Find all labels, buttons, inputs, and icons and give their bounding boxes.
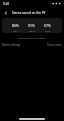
staticText: 9:41	[3, 2, 10, 6]
staticText: Connected to this device	[18, 36, 46, 39]
button[interactable]: 85%	[2, 18, 62, 33]
staticText: Left	[13, 29, 18, 32]
button[interactable]: Connected to this device	[0, 33, 64, 41]
staticText: Disconnect	[47, 43, 62, 47]
staticText: 85%	[12, 23, 19, 28]
staticText: Right	[29, 29, 35, 32]
staticText: 91%	[28, 23, 35, 28]
staticText: Case	[45, 29, 51, 32]
button[interactable]: Back	[0, 7, 11, 18]
staticText: Stereo sound on the P9	[12, 11, 46, 15]
button[interactable]: Disconnect	[47, 43, 62, 47]
staticText: Device settings	[2, 43, 21, 47]
staticText: 57%	[44, 23, 51, 28]
